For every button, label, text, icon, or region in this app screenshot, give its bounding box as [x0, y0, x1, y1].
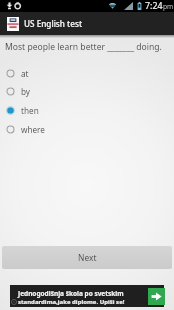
- staticText: Most people learn better _______ doing.: [5, 41, 162, 53]
- staticText: standardima,jake diplome. Upiši se!: [18, 298, 125, 306]
- button[interactable]: then: [0, 101, 174, 119]
- staticText: pm: [163, 2, 174, 11]
- button[interactable]: Jednogodišnja škola po svetskim: [10, 285, 164, 307]
- button[interactable]: by: [0, 82, 174, 100]
- button[interactable]: Next: [2, 246, 172, 269]
- staticText: by: [21, 86, 31, 97]
- staticText: then: [21, 105, 39, 116]
- staticText: US English test: [24, 18, 83, 29]
- staticText: 7:24: [145, 0, 163, 12]
- staticText: Jednogodišnja škola po svetskim: [18, 289, 124, 298]
- button[interactable]: where: [0, 120, 174, 138]
- button[interactable]: Go to advertiser: [148, 288, 165, 305]
- button[interactable]: US English test: [0, 12, 174, 35]
- button[interactable]: at: [0, 64, 174, 82]
- staticText: Next: [78, 252, 97, 263]
- staticText: where: [21, 124, 45, 135]
- staticText: at: [21, 68, 29, 79]
